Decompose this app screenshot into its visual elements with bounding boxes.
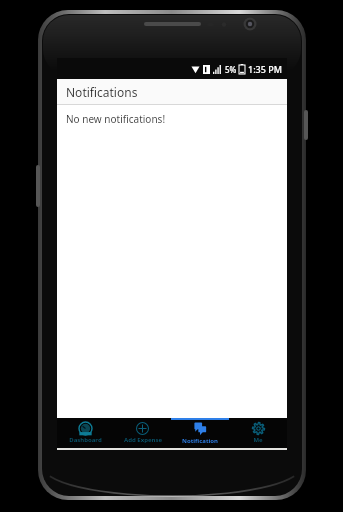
staticText: No new notifications! — [66, 112, 166, 126]
button[interactable]: Me — [229, 418, 287, 448]
staticText: Dashboard — [69, 436, 102, 444]
staticText: Notifications — [66, 84, 138, 100]
staticText: 5% — [225, 64, 237, 75]
button[interactable]: Dashboard — [57, 418, 114, 448]
staticText: Me — [253, 436, 263, 444]
staticText: Notification — [182, 437, 218, 445]
button[interactable]: Notification — [171, 418, 229, 448]
staticText: 1:35 PM — [248, 63, 282, 75]
staticText: Add Expense — [124, 436, 162, 444]
button[interactable]: Add Expense — [114, 418, 171, 448]
